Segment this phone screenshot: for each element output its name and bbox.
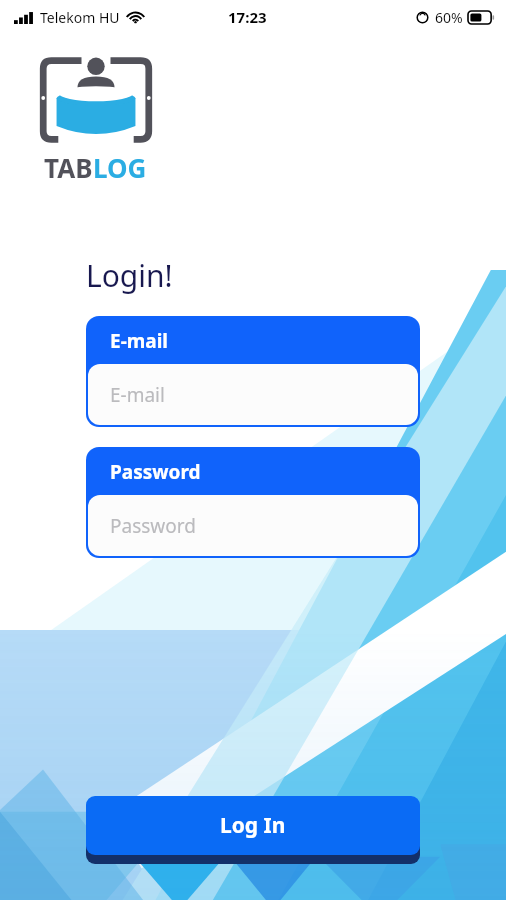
staticText: TAB [44, 150, 93, 185]
button[interactable]: Password input [86, 447, 420, 558]
button[interactable]: Log In [86, 796, 420, 866]
button[interactable]: E-mail input [86, 316, 420, 427]
staticText: Password [110, 459, 201, 485]
staticText: 60% [435, 8, 463, 27]
staticText: Login! [86, 255, 173, 296]
staticText: E-mail [110, 382, 165, 408]
staticText: Log In [220, 811, 286, 840]
staticText: 17:23 [228, 7, 267, 27]
staticText: Password [110, 513, 196, 539]
staticText: E-mail [110, 328, 168, 354]
staticText: Telekom HU [40, 8, 120, 27]
staticText: LOG [93, 150, 147, 185]
